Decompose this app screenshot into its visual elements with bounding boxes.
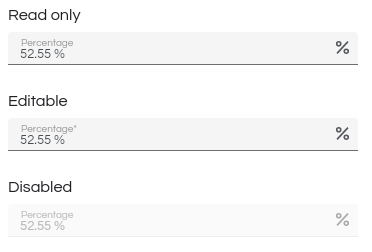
staticText: Percentage (21, 210, 74, 220)
staticText: Percentage (21, 38, 74, 48)
staticText: 52.55 % (20, 47, 65, 60)
staticText: Read only (8, 7, 81, 24)
other: Percent (336, 127, 349, 140)
staticText: Editable (8, 93, 68, 110)
button[interactable]: Percentage (8, 204, 358, 237)
staticText: Percentage* (21, 124, 78, 134)
staticText: Disabled (8, 179, 73, 196)
button[interactable]: Percentage (8, 32, 358, 65)
other: Percent (336, 41, 349, 54)
button[interactable]: Percentage* (8, 118, 358, 151)
staticText: Editable (8, 93, 68, 110)
staticText: 52.55 % (20, 133, 65, 146)
staticText: Disabled (8, 179, 73, 196)
staticText: Read only (8, 7, 81, 24)
other: Percent (336, 213, 349, 226)
staticText: 52.55 % (20, 219, 65, 232)
